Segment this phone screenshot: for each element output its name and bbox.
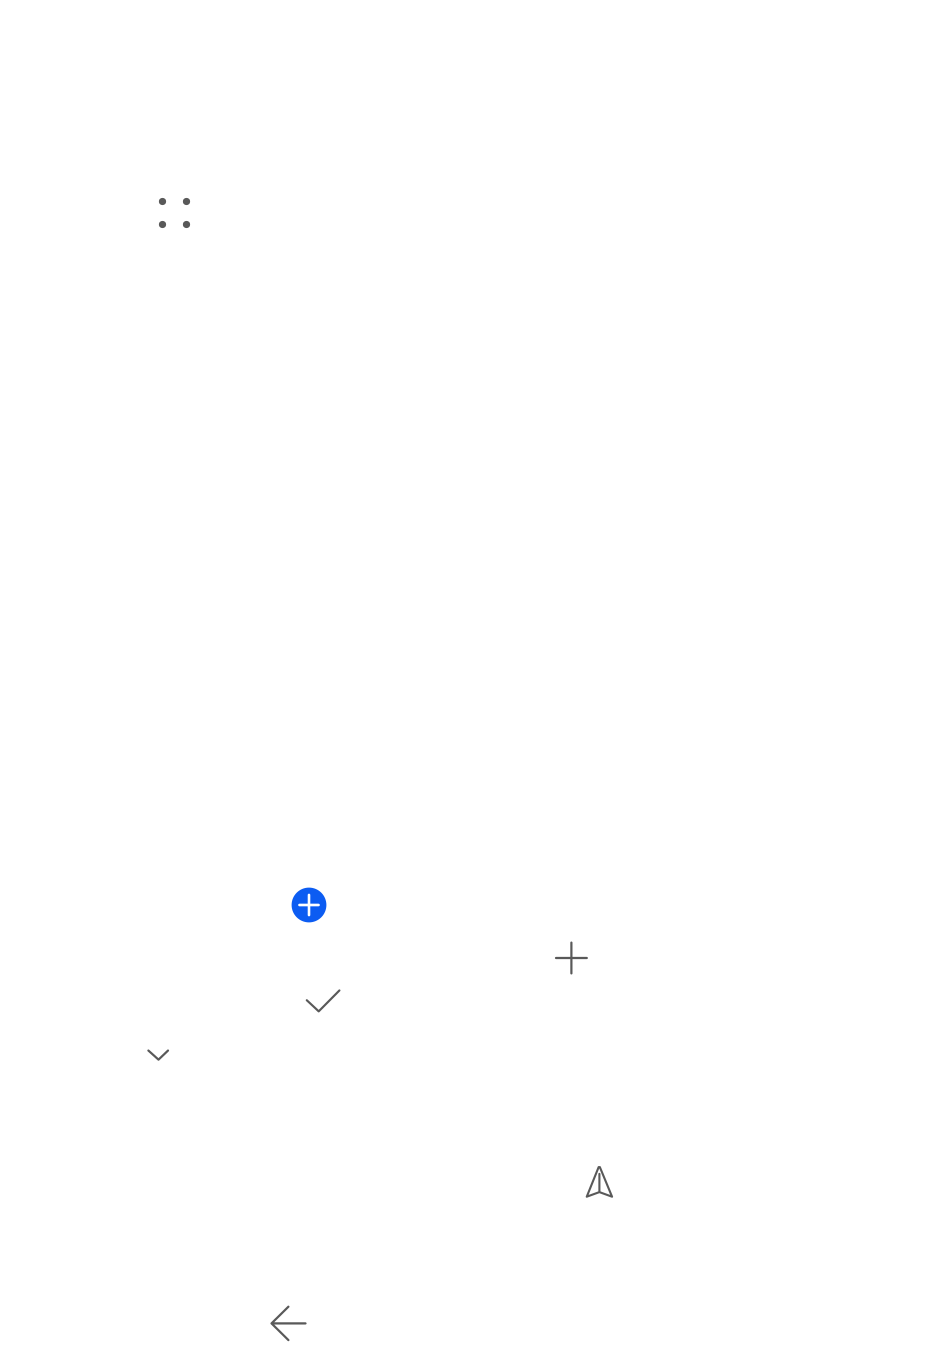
button[interactable]: Back xyxy=(262,1297,314,1349)
button[interactable]: New xyxy=(545,932,597,984)
button[interactable]: Expand xyxy=(132,1029,184,1081)
button[interactable]: Apps xyxy=(148,187,200,239)
button[interactable]: Send xyxy=(573,1156,625,1208)
button[interactable]: Done xyxy=(297,975,349,1027)
button[interactable]: Add xyxy=(283,879,335,931)
